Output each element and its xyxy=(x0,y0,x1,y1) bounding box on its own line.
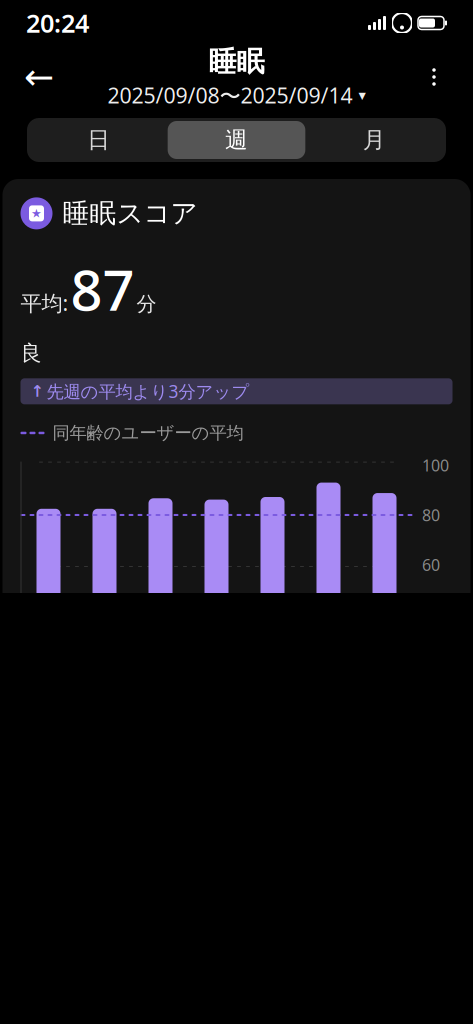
staticText: 80 xyxy=(422,504,440,526)
staticText: 月 xyxy=(363,126,386,154)
staticText: 分 xyxy=(136,292,156,316)
staticText: 2025/09/08〜2025/09/14 xyxy=(107,81,352,109)
staticText: ← xyxy=(24,57,54,97)
button[interactable]: 週 xyxy=(168,121,305,159)
staticText: 先週の平均より3分アップ xyxy=(46,380,249,403)
staticText: 良 xyxy=(20,340,41,366)
button[interactable]: 日 xyxy=(30,121,168,159)
staticText: ↑ xyxy=(30,382,43,400)
staticText: 20:24 xyxy=(26,6,89,40)
staticText: 睡眠 xyxy=(208,45,264,79)
button[interactable]: その他のオプション xyxy=(411,54,457,100)
button[interactable]: 戻る xyxy=(16,54,62,100)
staticText: 日 xyxy=(87,126,110,154)
button[interactable]: 月 xyxy=(305,121,443,159)
staticText: 睡眠スコア xyxy=(62,197,197,230)
staticText: 週 xyxy=(225,126,248,154)
staticText: 100 xyxy=(422,455,449,476)
staticText: 同年齢のユーザーの平均 xyxy=(52,422,243,444)
staticText: ▾ xyxy=(358,87,365,103)
staticText: 87 xyxy=(70,252,134,326)
staticText: 60 xyxy=(422,554,440,575)
staticText: 平均: xyxy=(20,288,68,317)
button[interactable]: 2025/09/08〜2025/09/14 xyxy=(107,81,365,109)
staticText: ★ xyxy=(31,207,42,220)
